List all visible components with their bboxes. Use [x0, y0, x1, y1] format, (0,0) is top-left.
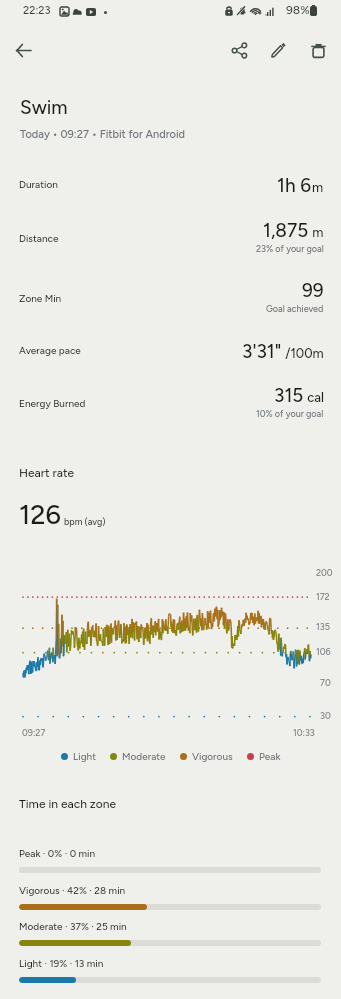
staticText: 315 [274, 384, 304, 407]
staticText: Goal achieved [266, 303, 324, 314]
staticText: Peak [259, 750, 281, 762]
staticText: 1h 6 [277, 174, 312, 197]
staticText: Vigorous [192, 750, 233, 762]
staticText: Duration [19, 178, 58, 190]
button[interactable]: Delete [300, 32, 336, 68]
staticText: Light · 19% · 13 min [19, 957, 104, 969]
staticText: Time in each zone [19, 797, 116, 811]
staticText: 106 [316, 646, 331, 657]
staticText: 135 [316, 621, 330, 632]
staticText: 3'31" [242, 340, 282, 363]
staticText: Energy Burned [19, 397, 86, 409]
staticText: Moderate [122, 750, 166, 762]
staticText: 172 [316, 591, 330, 602]
staticText: Peak · 0% · 0 min [19, 847, 96, 859]
staticText: 70 [320, 677, 331, 688]
staticText: bpm (avg) [64, 516, 106, 527]
staticText: 22:23 [23, 4, 51, 17]
staticText: Average pace [19, 344, 81, 356]
staticText: 126 [19, 498, 61, 530]
staticText: m [312, 180, 324, 196]
button[interactable]: Share [221, 32, 257, 68]
staticText: Light [73, 750, 96, 762]
staticText: 200 [316, 567, 333, 578]
staticText: 10:33 [293, 727, 315, 738]
button[interactable]: Energy Burned [0, 379, 341, 423]
staticText: Zone Min [19, 292, 62, 304]
staticText: 23% of your goal [256, 243, 324, 254]
staticText: 10% of your goal [256, 408, 324, 419]
staticText: 99 [302, 279, 324, 302]
button[interactable]: Distance [0, 214, 341, 258]
staticText: Vigorous · 42% · 28 min [19, 884, 126, 896]
button[interactable]: Duration [0, 160, 341, 204]
staticText: Heart rate [19, 466, 75, 480]
staticText: m [309, 225, 324, 241]
button[interactable]: Edit [260, 32, 296, 68]
staticText: Moderate · 37% · 25 min [19, 920, 127, 932]
staticText: Today • 09:27 • Fitbit for Android [20, 128, 186, 141]
staticText: Distance [19, 232, 59, 244]
staticText: Swim [20, 96, 68, 119]
button[interactable]: Back [5, 32, 41, 68]
staticText: /100m [282, 346, 324, 362]
button[interactable]: Average pace [0, 326, 341, 370]
staticText: 30 [320, 710, 331, 721]
staticText: 09:27 [22, 727, 46, 738]
button[interactable]: Zone Min [0, 274, 341, 318]
staticText: 98% [286, 3, 310, 17]
staticText: 1,875 [263, 219, 309, 242]
staticText: cal [304, 390, 324, 406]
